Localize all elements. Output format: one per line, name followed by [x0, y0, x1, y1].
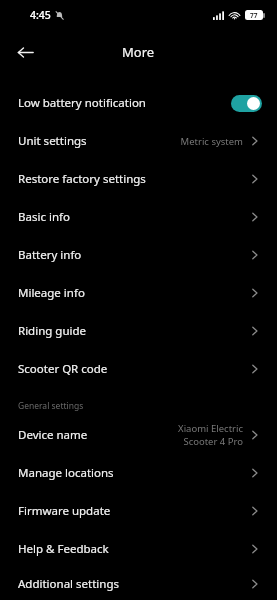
- staticText: Restore factory settings: [18, 171, 146, 187]
- staticText: Mileage info: [18, 285, 85, 301]
- staticText: Battery info: [18, 247, 82, 263]
- staticText: More: [122, 43, 155, 61]
- staticText: 4:45: [30, 8, 51, 22]
- staticText: General settings: [18, 400, 84, 412]
- button[interactable]: Scooter QR code: [0, 350, 277, 388]
- staticText: Additional settings: [18, 576, 120, 592]
- staticText: Scooter QR code: [18, 361, 108, 377]
- staticText: Firmware update: [18, 503, 111, 519]
- button[interactable]: Battery info: [0, 236, 277, 274]
- button[interactable]: Additional settings: [0, 568, 277, 600]
- button[interactable]: Riding guide: [0, 312, 277, 350]
- staticText: Device name: [18, 427, 88, 443]
- staticText: Riding guide: [18, 323, 87, 339]
- button[interactable]: Device name: [0, 416, 277, 454]
- button[interactable]: Restore factory settings: [0, 160, 277, 198]
- staticText: Manage locations: [18, 465, 114, 481]
- button[interactable]: Unit settings: [0, 122, 277, 160]
- button[interactable]: Low battery notification: [0, 84, 277, 122]
- button[interactable]: Basic info: [0, 198, 277, 236]
- staticText: Unit settings: [18, 133, 87, 149]
- staticText: Help & Feedback: [18, 541, 109, 557]
- button[interactable]: Help & Feedback: [0, 530, 277, 568]
- button[interactable]: Firmware update: [0, 492, 277, 530]
- button[interactable]: Mileage info: [0, 274, 277, 312]
- staticText: Scooter 4 Pro: [183, 435, 243, 448]
- staticText: Basic info: [18, 209, 70, 225]
- staticText: 77: [250, 11, 258, 20]
- staticText: Low battery notification: [18, 95, 146, 111]
- button[interactable]: Back: [10, 37, 40, 67]
- staticText: Xiaomi Electric: [178, 422, 243, 435]
- button[interactable]: Manage locations: [0, 454, 277, 492]
- staticText: Metric system: [180, 135, 243, 148]
